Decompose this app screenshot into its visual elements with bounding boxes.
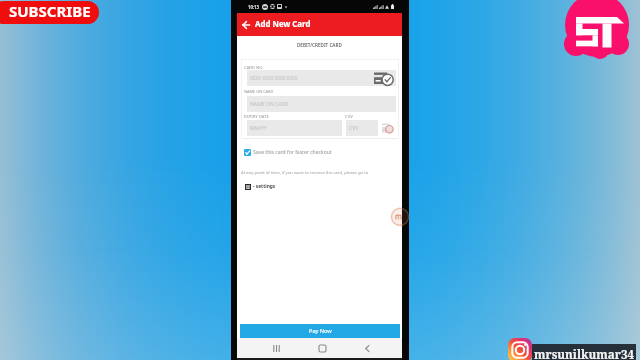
- staticText: CVV: [345, 114, 353, 120]
- button[interactable]: Recent apps: [267, 339, 285, 357]
- button[interactable]: Home: [313, 339, 331, 357]
- staticText: NAME ON CARD: [244, 89, 274, 94]
- staticText: NAME ON CARD: [250, 101, 289, 108]
- staticText: XXXX XXXX XXXX XXXX: [250, 75, 298, 81]
- staticText: CARD NO.: [244, 65, 264, 71]
- staticText: EXPIRY DATE: [244, 114, 269, 120]
- button[interactable]: Save this card for faster checkout: [241, 146, 332, 158]
- button[interactable]: Pay Now: [240, 324, 400, 338]
- button[interactable]: Back: [240, 19, 252, 31]
- staticText: Pay Now: [309, 327, 332, 335]
- staticText: DEBIT/CREDIT CARD: [297, 42, 342, 48]
- button[interactable]: CVV: [346, 120, 378, 136]
- staticText: SUBSCRIBE: [9, 1, 91, 21]
- staticText: CVV: [349, 125, 359, 132]
- staticText: Save this card for faster checkout: [253, 149, 332, 156]
- button[interactable]: MM/YY: [247, 120, 342, 136]
- button[interactable]: NAME ON CARD: [247, 96, 396, 112]
- button[interactable]: - settings: [245, 182, 276, 191]
- staticText: At any point of time, if you want to rem…: [241, 170, 369, 176]
- staticText: Add New Card: [255, 19, 311, 30]
- button[interactable]: Back: [358, 339, 376, 357]
- button[interactable]: What is CVV: [381, 120, 394, 136]
- staticText: MM/YY: [250, 125, 267, 132]
- staticText: mrsunilkumar34: [534, 346, 635, 360]
- button[interactable]: SUBSCRIBE: [0, 1, 99, 24]
- button[interactable]: Channel logo: [564, 0, 631, 60]
- button[interactable]: Instagram mrsunilkumar34: [532, 344, 636, 360]
- button[interactable]: XXXX XXXX XXXX XXXX: [247, 70, 396, 86]
- staticText: 10:13: [248, 4, 260, 10]
- staticText: - settings: [253, 183, 276, 190]
